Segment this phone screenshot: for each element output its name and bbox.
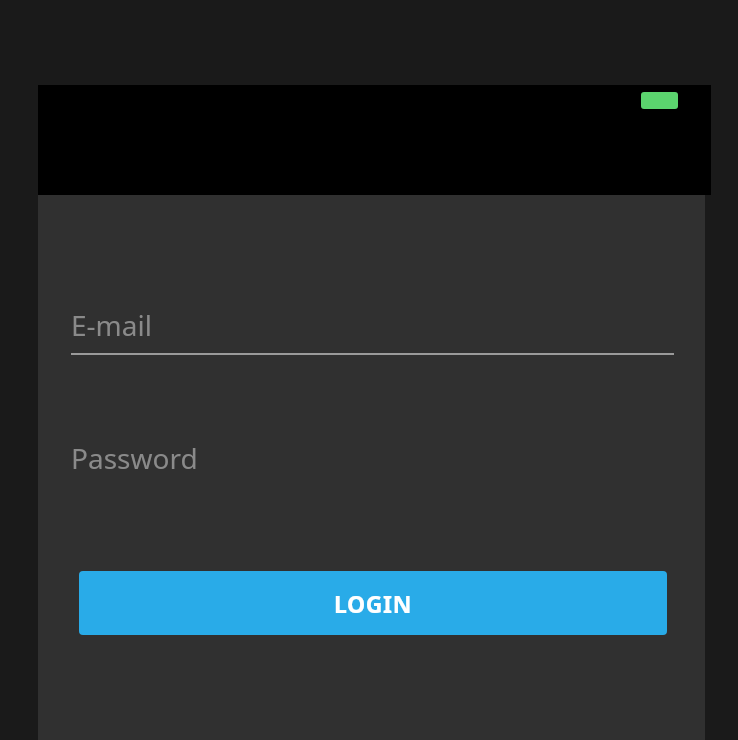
button[interactable]: Password (71, 439, 674, 487)
button[interactable]: LOGIN (79, 571, 667, 635)
staticText: Password (71, 439, 198, 477)
staticText: LOGIN (334, 588, 412, 619)
staticText: E-mail (71, 306, 152, 344)
button[interactable]: Connection status indicator (641, 92, 678, 109)
button[interactable]: E-mail (71, 306, 674, 355)
